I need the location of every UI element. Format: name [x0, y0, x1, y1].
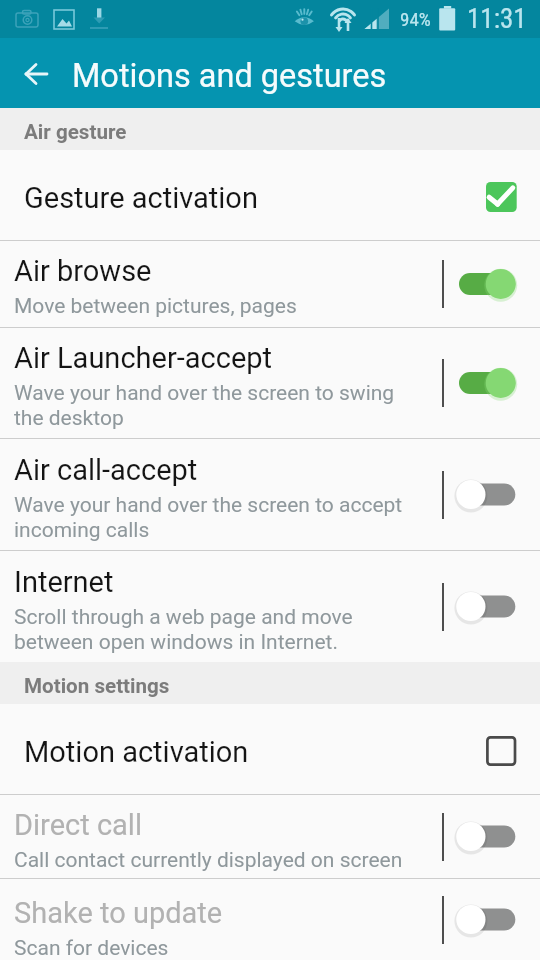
button[interactable]: Air call-accept — [442, 439, 540, 550]
staticText: Air browse — [14, 254, 152, 288]
button[interactable]: Air Launcher-accept — [0, 328, 540, 438]
staticText: Gesture activation — [24, 181, 258, 215]
staticText: Wave your hand over the screen to swing … — [14, 381, 426, 431]
button[interactable]: Air browse — [442, 241, 540, 327]
staticText: Motions and gestures — [72, 57, 387, 95]
button[interactable]: Gesture activation — [0, 150, 540, 240]
button[interactable]: Air Launcher-accept — [442, 328, 540, 438]
staticText: Shake to update — [14, 896, 223, 930]
button[interactable]: Direct call — [0, 795, 540, 878]
staticText: Air gesture — [24, 120, 127, 144]
staticText: Direct call — [14, 808, 142, 842]
staticText: Air call-accept — [14, 453, 198, 487]
staticText: Move between pictures, pages — [14, 294, 297, 319]
button[interactable]: Internet — [442, 551, 540, 662]
staticText: Motion settings — [24, 674, 170, 698]
button[interactable]: Navigate up — [0, 38, 62, 108]
staticText: Wave your hand over the screen to accept… — [14, 493, 426, 543]
button[interactable]: Direct call — [442, 795, 540, 878]
button[interactable]: Internet — [0, 551, 540, 662]
staticText: 94% — [400, 8, 431, 30]
button[interactable]: Air browse — [0, 241, 540, 327]
staticText: Call contact currently displayed on scre… — [14, 848, 403, 873]
staticText: Internet — [14, 565, 114, 599]
staticText: Scan for devices — [14, 936, 169, 960]
staticText: Scroll through a web page and move betwe… — [14, 605, 426, 655]
staticText: Air Launcher-accept — [14, 341, 273, 375]
staticText: 11:31 — [467, 3, 527, 35]
button[interactable]: Shake to update — [442, 879, 540, 960]
staticText: Motion activation — [24, 735, 249, 769]
button[interactable]: Motion activation — [0, 704, 540, 794]
button[interactable]: Air call-accept — [0, 439, 540, 550]
button[interactable]: Shake to update — [0, 879, 540, 960]
